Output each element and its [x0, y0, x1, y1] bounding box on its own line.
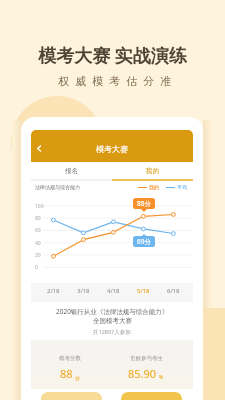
staticText: 模考大赛 — [96, 144, 128, 154]
staticText: 100 — [35, 203, 44, 210]
staticText: % — [159, 374, 164, 381]
staticText: 85.90 — [128, 366, 157, 381]
staticText: 20 — [35, 252, 41, 259]
button[interactable]: 击败参与考生 — [111, 355, 181, 385]
button[interactable]: 我的 — [112, 162, 193, 181]
staticText: 69分 — [137, 237, 151, 246]
staticText: 我的 — [149, 184, 159, 190]
staticText: 3/18 — [77, 287, 90, 295]
button[interactable] — [41, 392, 102, 400]
staticText: 2/18 — [47, 287, 60, 295]
button[interactable]: 返回 — [33, 142, 46, 155]
staticText: 2020银行从业《法律法规与综合能力》 — [56, 307, 169, 316]
staticText: 我的 — [146, 167, 159, 175]
button[interactable]: 模考分数 — [35, 355, 105, 385]
staticText: 88 — [60, 366, 73, 381]
staticText: 6/18 — [167, 287, 180, 295]
staticText: 模考分数 — [59, 355, 81, 362]
staticText: 分 — [75, 375, 80, 381]
button[interactable]: 报名 — [31, 162, 112, 181]
staticText: 60 — [35, 227, 41, 234]
staticText: 报名 — [65, 167, 78, 175]
staticText: 法律法规与综合能力 — [35, 184, 80, 190]
staticText: 平均 — [177, 184, 187, 190]
button[interactable] — [121, 392, 182, 400]
staticText: 5/18 — [137, 287, 150, 295]
staticText: 0 — [35, 264, 38, 271]
staticText: 全国模考大赛 — [93, 317, 132, 325]
staticText: 40 — [35, 240, 41, 247]
staticText: 模考大赛 实战演练 — [38, 43, 187, 68]
staticText: 击败参与考生 — [130, 355, 163, 362]
staticText: 4/18 — [107, 287, 120, 295]
staticText: 权 威 模 考 估 分 准 — [58, 73, 173, 88]
staticText: 88分 — [137, 199, 151, 208]
staticText: 共12897人参加 — [93, 328, 131, 336]
staticText: 80 — [35, 215, 41, 222]
